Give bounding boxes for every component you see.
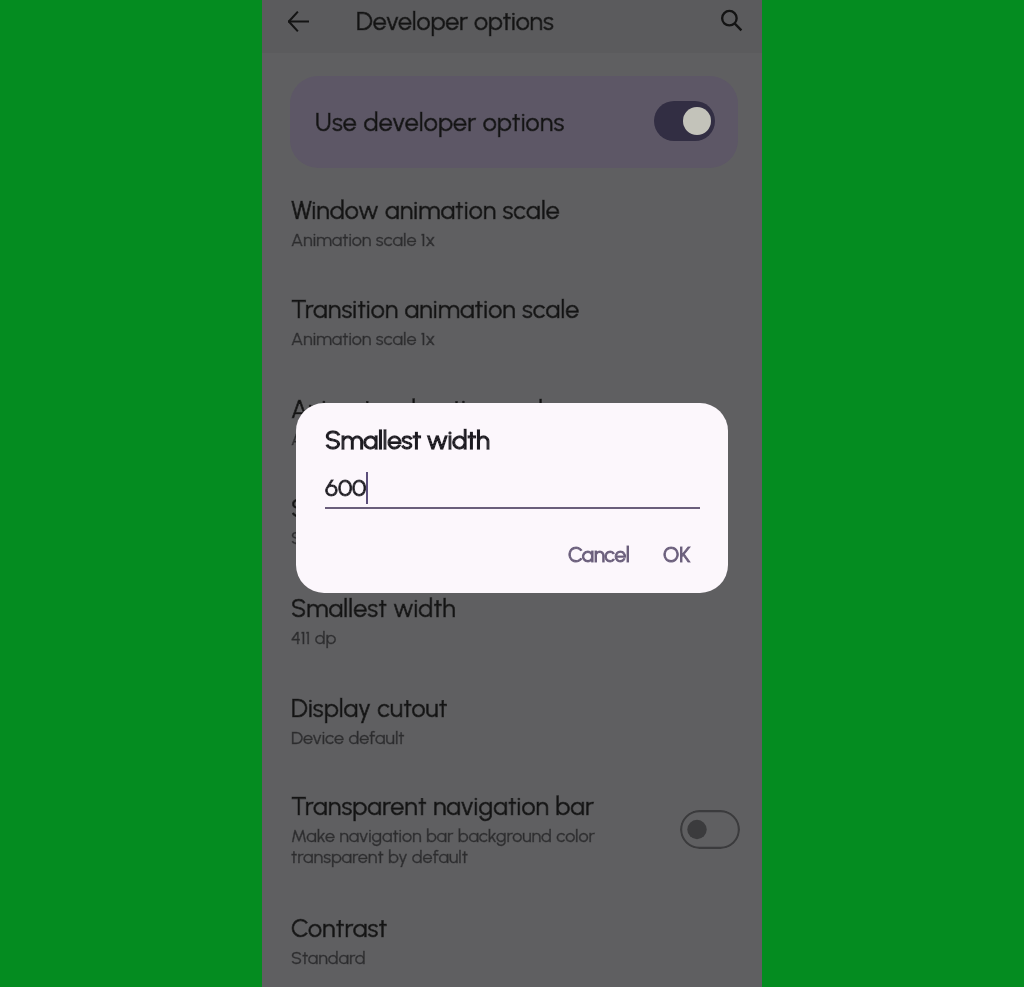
staticText: Secondary displays — [291, 493, 508, 523]
staticText: Window animation scale — [291, 195, 560, 225]
button[interactable]: Transparent navigation bar — [262, 770, 762, 870]
staticText: Use developer options — [315, 107, 565, 137]
staticText: Animation scale 1x — [291, 328, 436, 350]
button[interactable]: Use developer options — [290, 76, 738, 168]
staticText: Animation scale 1x — [291, 428, 436, 450]
staticText: Animation scale 1x — [291, 229, 436, 251]
staticText: 411 dp — [291, 627, 337, 649]
button[interactable]: Display cutout — [262, 672, 762, 751]
staticText: Secondary displays — [291, 493, 508, 523]
staticText: OK — [663, 542, 691, 567]
staticText: Standard — [291, 947, 366, 969]
staticText: 600 — [325, 473, 367, 502]
staticText: Standard — [291, 947, 366, 969]
staticText: transparent by default — [291, 846, 468, 868]
staticText: 600 — [325, 473, 367, 502]
staticText: transparent by default — [291, 846, 468, 868]
staticText: Display cutout — [291, 693, 448, 723]
staticText: Make navigation bar background color — [291, 825, 595, 847]
staticText: Animator duration scale — [291, 394, 558, 424]
button[interactable]: Search — [707, 0, 755, 44]
staticText: Window animation scale — [291, 195, 560, 225]
button[interactable]: Transparent navigation bar switch — [680, 810, 740, 849]
staticText: Smallest width — [325, 424, 490, 455]
staticText: Simulate secondary displays — [291, 527, 516, 549]
staticText: Display cutout — [291, 693, 448, 723]
staticText: Smallest width — [291, 593, 456, 623]
staticText: Developer options — [356, 6, 554, 36]
button[interactable]: Transition animation scale — [262, 273, 762, 352]
staticText: Cancel — [568, 542, 630, 567]
staticText: Animation scale 1x — [291, 229, 436, 251]
staticText: Use developer options — [315, 107, 565, 137]
staticText: Simulate secondary displays — [291, 527, 516, 549]
staticText: Animator duration scale — [291, 394, 558, 424]
staticText: Contrast — [291, 913, 388, 943]
staticText: Transparent navigation bar — [291, 791, 595, 821]
staticText: Animation scale 1x — [291, 428, 436, 450]
staticText: Transition animation scale — [291, 294, 580, 324]
staticText: Transparent navigation bar — [291, 791, 595, 821]
staticText: Cancel — [568, 542, 630, 567]
staticText: Developer options — [356, 6, 554, 36]
staticText: 411 dp — [291, 627, 337, 649]
staticText: Animation scale 1x — [291, 328, 436, 350]
staticText: Smallest width — [291, 593, 456, 623]
staticText: Device default — [291, 727, 405, 749]
staticText: Contrast — [291, 913, 388, 943]
button[interactable]: Secondary displays — [262, 472, 762, 551]
staticText: OK — [663, 542, 691, 567]
staticText: Make navigation bar background color — [291, 825, 595, 847]
button[interactable]: Cancel — [556, 535, 640, 577]
button[interactable]: Window animation scale — [262, 174, 762, 253]
button[interactable]: OK — [651, 535, 707, 577]
staticText: Device default — [291, 727, 405, 749]
button[interactable]: Smallest width — [262, 572, 762, 651]
button[interactable]: Back — [274, 0, 322, 45]
staticText: Smallest width — [325, 424, 490, 455]
button[interactable]: Contrast — [262, 892, 762, 971]
button[interactable]: Animator duration scale — [262, 373, 762, 452]
staticText: Transition animation scale — [291, 294, 580, 324]
